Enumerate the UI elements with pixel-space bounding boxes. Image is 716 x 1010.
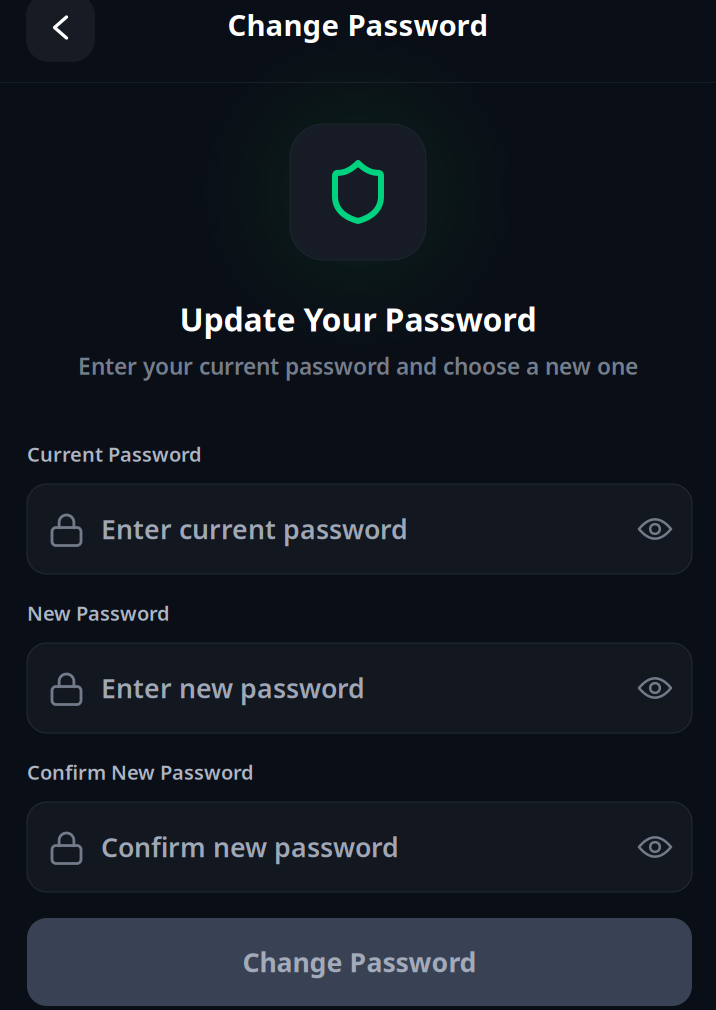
button[interactable]: Enter current password <box>27 484 639 574</box>
button[interactable]: Show password <box>639 484 692 574</box>
button[interactable]: Back <box>26 0 95 62</box>
button[interactable]: Show password <box>639 643 692 733</box>
button[interactable]: Change Password <box>27 918 692 1006</box>
staticText: Confirm new password <box>101 829 399 865</box>
button[interactable]: Show password <box>639 802 692 892</box>
button[interactable]: Enter new password <box>27 643 639 733</box>
staticText: Enter new password <box>101 670 365 706</box>
staticText: New Password <box>27 600 170 626</box>
staticText: Update Your Password <box>179 298 536 340</box>
staticText: Change Password <box>242 944 476 980</box>
button[interactable]: Confirm new password <box>27 802 639 892</box>
staticText: Enter your current password and choose a… <box>78 351 638 381</box>
staticText: Current Password <box>27 441 202 467</box>
staticText: Change Password <box>227 5 488 44</box>
staticText: Enter current password <box>101 511 408 547</box>
staticText: Confirm New Password <box>27 759 254 785</box>
